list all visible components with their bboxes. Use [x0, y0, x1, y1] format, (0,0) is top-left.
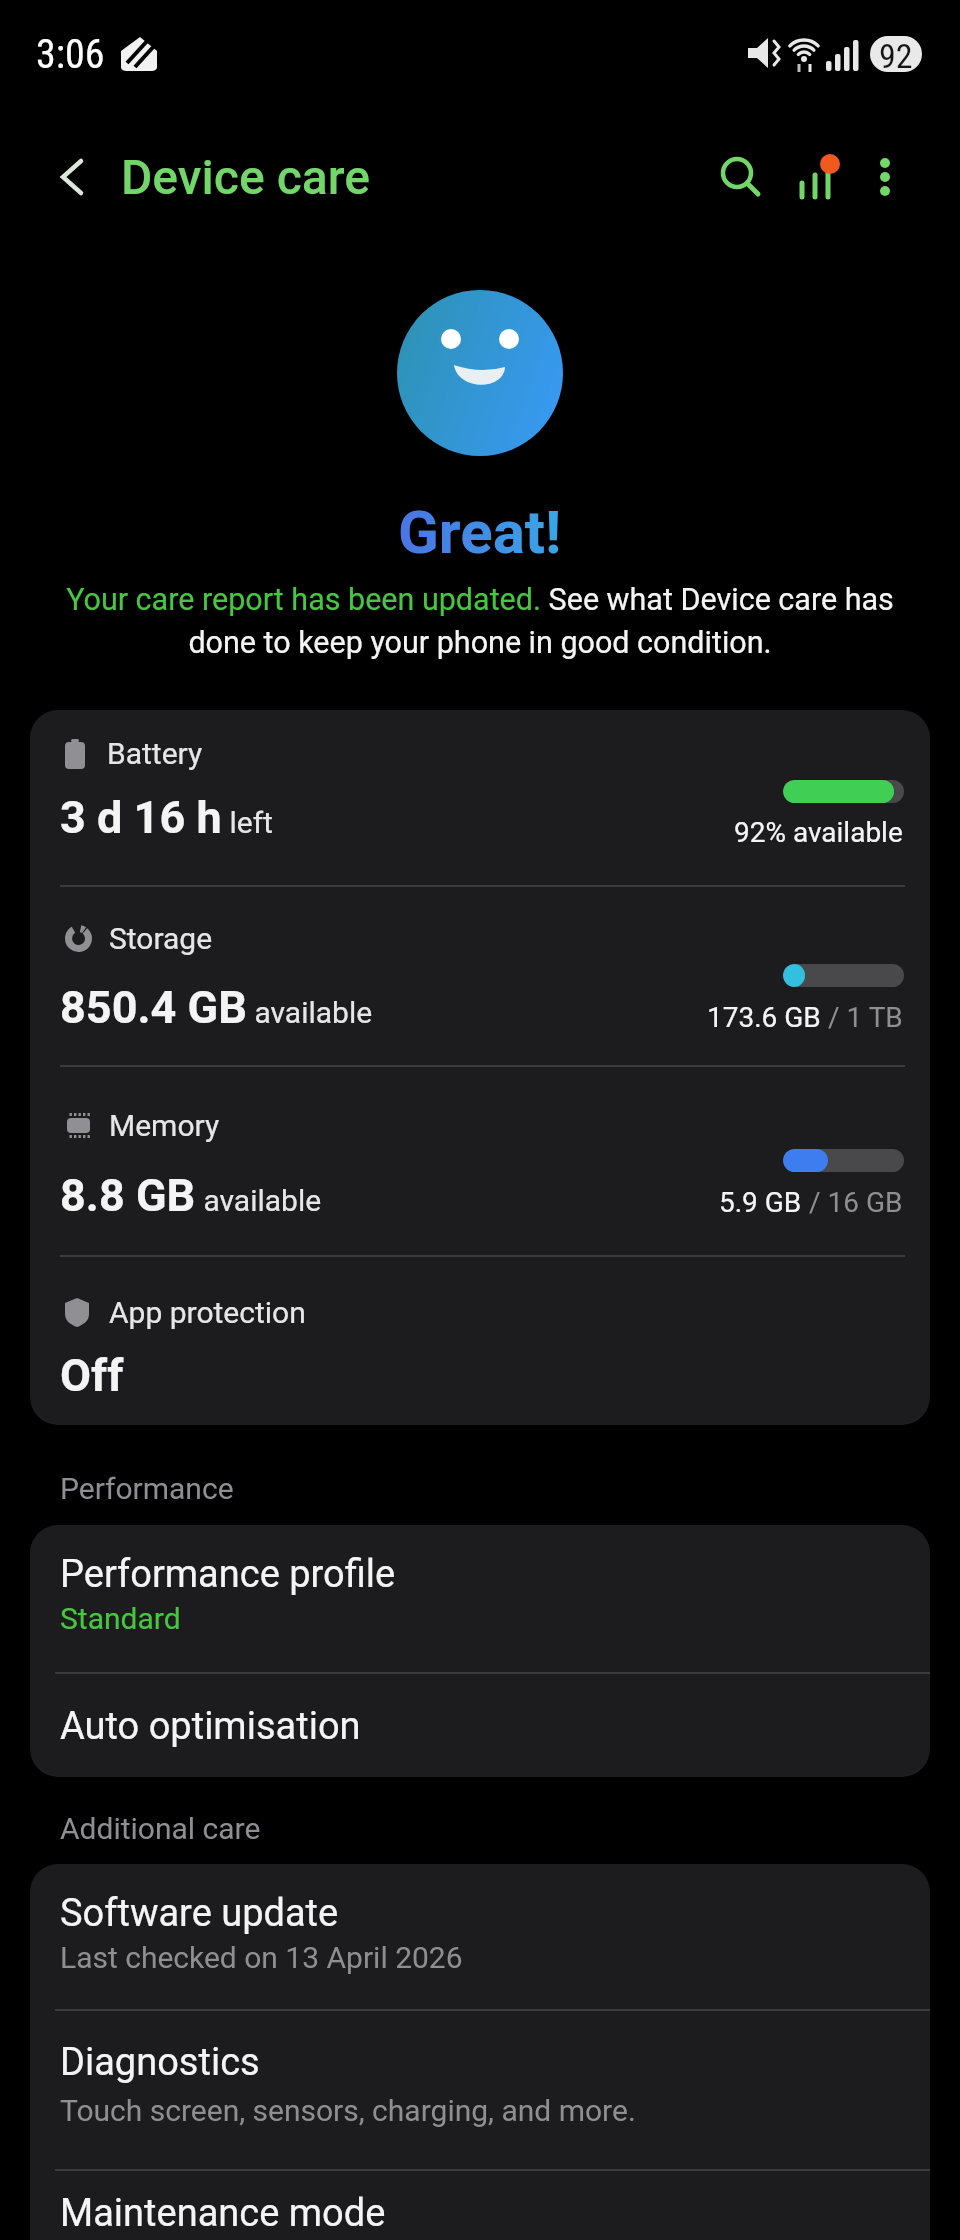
staticText: Software update [60, 1891, 339, 1936]
button[interactable]: Battery [30, 710, 930, 885]
staticText: 8.8 GB [60, 1169, 196, 1222]
staticText: Battery [107, 736, 203, 771]
staticText: Diagnostics [60, 2040, 260, 2085]
staticText: Performance [60, 1471, 234, 1506]
staticText: 173.6 GB [707, 1001, 828, 1034]
button[interactable]: Storage [30, 887, 930, 1065]
button[interactable] [870, 147, 900, 207]
button[interactable]: Diagnostics [30, 2011, 930, 2169]
button[interactable] [795, 145, 843, 209]
staticText: Off [60, 1349, 124, 1402]
staticText: 850.4 GB [60, 981, 247, 1034]
staticText: 5.9 GB [719, 1186, 809, 1219]
button[interactable]: Performance profile [30, 1525, 930, 1672]
staticText: Additional care [60, 1811, 261, 1846]
button[interactable] [717, 153, 765, 201]
staticText: available [196, 1183, 322, 1218]
staticText: Standard [60, 1601, 181, 1636]
button[interactable]: Software update [30, 1864, 930, 2009]
staticText: Device care [121, 149, 371, 205]
staticText: App protection [109, 1295, 306, 1330]
staticText: Performance profile [60, 1552, 396, 1597]
button[interactable]: Memory [30, 1067, 930, 1255]
button[interactable]: Auto optimisation [30, 1674, 930, 1777]
staticText: available [247, 995, 373, 1030]
staticText: Storage [109, 921, 213, 956]
button[interactable]: Maintenance mode [30, 2171, 930, 2240]
staticText: 3 d 16 h [60, 791, 222, 844]
button[interactable] [49, 155, 93, 199]
staticText: 3:06 [36, 31, 105, 78]
staticText: / 1 TB [828, 1001, 903, 1034]
staticText: Your care report has been updated. See w… [66, 582, 894, 660]
staticText: 92 [879, 36, 913, 72]
staticText: Last checked on 13 April 2026 [60, 1940, 463, 1975]
button[interactable]: App protection [30, 1257, 930, 1425]
staticText: Great! [398, 497, 562, 567]
staticText: Auto optimisation [60, 1704, 361, 1749]
staticText: 92% available [734, 816, 903, 849]
staticText: Maintenance mode [60, 2191, 386, 2236]
staticText: Memory [109, 1108, 220, 1143]
staticText: Touch screen, sensors, charging, and mor… [60, 2093, 636, 2128]
staticText: / 16 GB [809, 1186, 903, 1219]
staticText: left [222, 805, 273, 840]
